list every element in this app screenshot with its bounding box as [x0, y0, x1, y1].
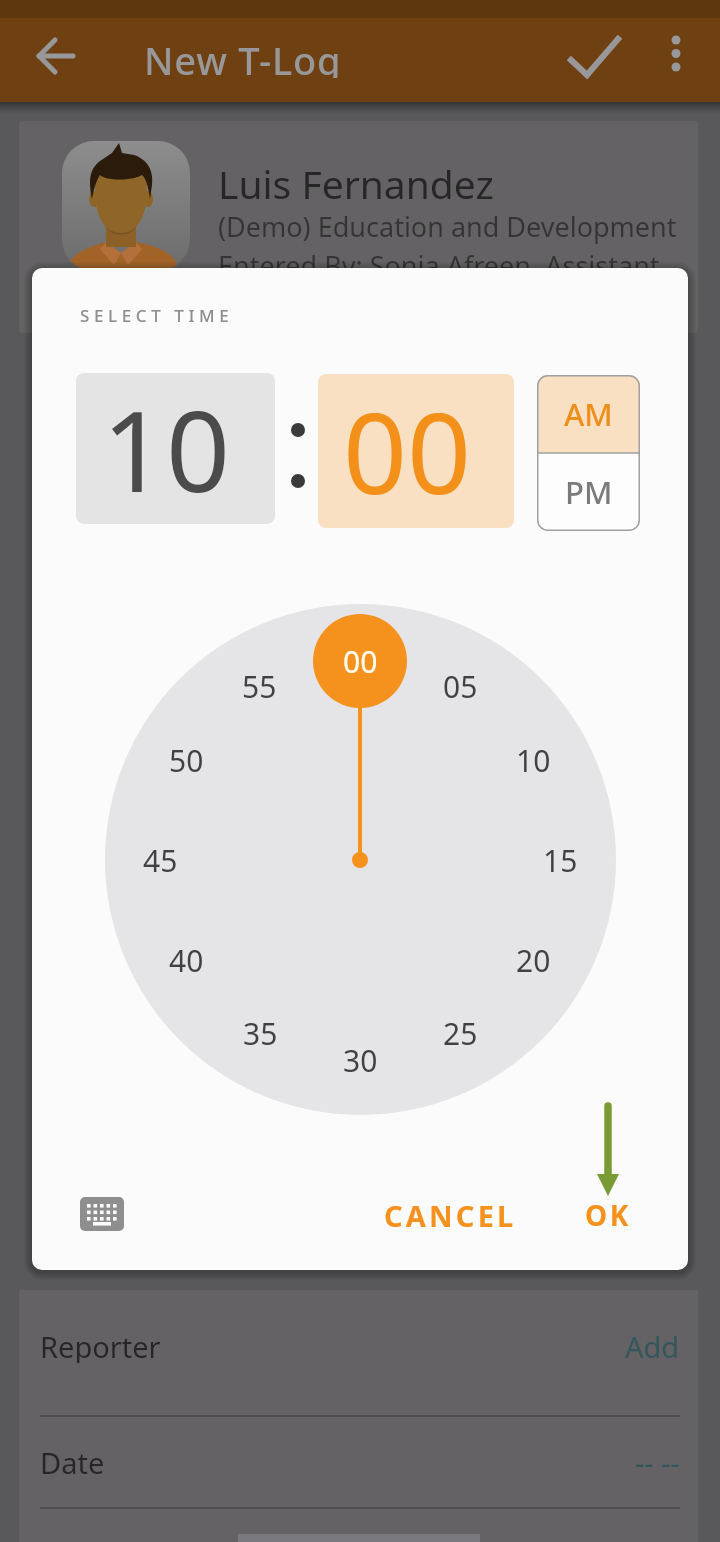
button[interactable]	[570, 1196, 646, 1232]
staticText: New T-Log	[144, 34, 342, 78]
staticText: -- --	[635, 1443, 680, 1479]
staticText: 00	[343, 374, 472, 527]
staticText: 45	[143, 840, 178, 881]
staticText: AM	[564, 393, 613, 435]
staticText: 55	[242, 666, 277, 707]
staticText: 35	[243, 1013, 278, 1054]
button[interactable]	[656, 26, 696, 86]
button[interactable]	[72, 1188, 132, 1240]
staticText: OK	[585, 1196, 631, 1232]
staticText: 20	[516, 940, 551, 981]
staticText: 30	[343, 1040, 378, 1081]
button[interactable]	[28, 28, 84, 84]
button[interactable]	[520, 1327, 680, 1363]
staticText: 40	[169, 940, 204, 981]
button[interactable]: 10	[76, 373, 275, 524]
staticText: Entered By: Sonia Afreen, Assistant	[218, 247, 660, 283]
staticText: Date	[40, 1443, 105, 1479]
staticText: Reporter	[40, 1327, 161, 1363]
staticText: PM	[565, 471, 613, 513]
button[interactable]: PM	[537, 453, 640, 531]
staticText: 50	[169, 740, 204, 781]
staticText: 05	[443, 666, 478, 707]
staticText: CANCEL	[384, 1196, 517, 1232]
staticText: 25	[443, 1013, 478, 1054]
staticText: 10	[102, 373, 231, 523]
button[interactable]	[380, 1196, 520, 1232]
staticText: 10	[516, 740, 551, 781]
staticText: 15	[543, 840, 578, 881]
staticText: Luis Fernandez	[218, 157, 494, 203]
staticText: Add	[625, 1327, 680, 1363]
button[interactable]	[565, 26, 625, 86]
staticText: (Demo) Education and Development	[218, 208, 677, 245]
staticText: SELECT TIME	[80, 304, 234, 327]
button[interactable]: AM	[537, 375, 640, 453]
staticText: 00	[343, 641, 378, 682]
button[interactable]: 00	[318, 374, 514, 528]
